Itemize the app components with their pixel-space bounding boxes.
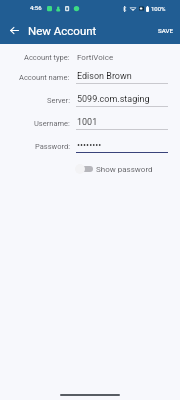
- staticText: 4:56: [30, 4, 42, 11]
- staticText: ••••••••: [77, 140, 102, 151]
- staticText: 1001: [77, 117, 98, 128]
- staticText: New Account: [28, 24, 97, 37]
- button[interactable]: Back: [0, 17, 26, 43]
- button[interactable]: Username:: [0, 114, 180, 131]
- staticText: 5099.com.staging: [77, 94, 150, 105]
- staticText: Account type:: [24, 53, 70, 62]
- staticText: Server:: [47, 96, 70, 105]
- staticText: SAVE: [158, 27, 173, 34]
- staticText: Account name:: [19, 73, 70, 82]
- staticText: 100%: [151, 5, 166, 12]
- button[interactable]: Server:: [0, 91, 180, 108]
- button[interactable]: Password:: [0, 137, 180, 154]
- button[interactable]: SAVE: [151, 19, 180, 42]
- staticText: Show password: [96, 165, 153, 174]
- staticText: Edison Brown: [77, 71, 132, 82]
- staticText: Username:: [34, 119, 70, 128]
- staticText: FortiVoice: [77, 53, 114, 62]
- staticText: Password:: [35, 142, 70, 151]
- button[interactable]: Account name:: [0, 68, 180, 85]
- button[interactable]: Show password: [75, 164, 180, 174]
